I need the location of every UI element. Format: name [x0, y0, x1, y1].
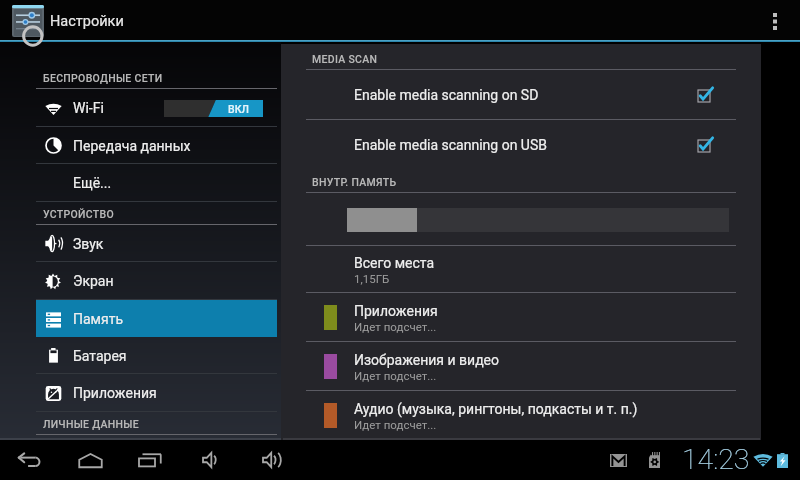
staticText: Настройки — [50, 13, 124, 30]
button[interactable]: Home — [70, 440, 110, 480]
staticText: 14:23 — [682, 443, 750, 476]
staticText: Ещё... — [73, 175, 112, 191]
staticText: 1,15ГБ — [354, 272, 390, 285]
button[interactable]: Recent apps — [130, 440, 170, 480]
staticText: Передача данных — [73, 138, 191, 154]
staticText: Изображения и видео — [354, 352, 500, 368]
button[interactable]: Volume up — [252, 440, 292, 480]
button[interactable]: Gmail — [605, 440, 631, 480]
button[interactable]: Ещё... — [36, 164, 277, 202]
staticText: Приложения — [354, 303, 438, 319]
staticText: Wi-Fi — [73, 100, 104, 116]
staticText: Экран — [73, 273, 114, 289]
button[interactable]: Передача данных — [36, 127, 277, 164]
button[interactable]: Back — [10, 440, 50, 480]
staticText: Аудио (музыка, рингтоны, подкасты и т. п… — [354, 401, 638, 417]
staticText: ЛИЧНЫЕ ДАННЫЕ — [43, 418, 140, 430]
button[interactable]: Батарея — [36, 337, 277, 374]
staticText: Enable media scanning on SD — [354, 87, 539, 103]
staticText: Идет подсчет... — [354, 418, 437, 431]
button[interactable]: Всего места — [306, 246, 736, 293]
button[interactable]: Приложения — [36, 374, 277, 412]
staticText: УСТРОЙСТВО — [43, 208, 114, 220]
button[interactable]: Volume down — [190, 440, 230, 480]
button[interactable]: SD card — [641, 440, 667, 480]
button[interactable]: Wi-Fi on — [164, 100, 263, 117]
button[interactable]: More options — [752, 0, 798, 42]
staticText: ВКЛ — [228, 103, 249, 115]
button[interactable]: Enable media scanning on USB — [306, 120, 736, 170]
button[interactable]: Звук — [36, 225, 277, 262]
staticText: Приложения — [73, 385, 157, 401]
button[interactable]: Аудио (музыка, рингтоны, подкасты и т. п… — [306, 391, 736, 440]
staticText: MEDIA SCAN — [312, 53, 378, 65]
staticText: Память — [73, 311, 124, 327]
staticText: ВНУТР. ПАМЯТЬ — [312, 176, 397, 188]
staticText: Идет подсчет... — [354, 369, 437, 382]
button[interactable]: Память — [36, 300, 277, 337]
staticText: Идет подсчет... — [354, 320, 437, 333]
staticText: Всего места — [354, 255, 435, 271]
staticText: Батарея — [73, 348, 127, 364]
button[interactable]: Wi-Fi — [36, 89, 277, 127]
staticText: Enable media scanning on USB — [354, 137, 547, 153]
button[interactable]: Изображения и видео — [306, 342, 736, 391]
button[interactable]: Enable media scanning on SD — [306, 70, 736, 120]
staticText: Звук — [73, 236, 104, 252]
staticText: БЕСПРОВОДНЫЕ СЕТИ — [43, 72, 163, 84]
button[interactable]: Экран — [36, 262, 277, 300]
button[interactable]: Приложения — [306, 293, 736, 342]
